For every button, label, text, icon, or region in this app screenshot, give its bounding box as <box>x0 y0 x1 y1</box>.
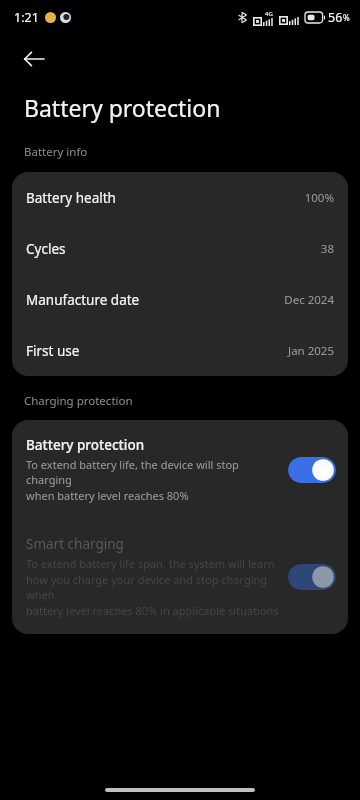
staticText: Battery health <box>26 189 116 207</box>
staticText: 56 <box>328 9 343 26</box>
staticText: Jan 2025 <box>288 343 334 359</box>
staticText: 1:21 <box>14 9 39 26</box>
staticText: Battery info <box>24 144 88 160</box>
staticText: Smart charging <box>26 535 124 553</box>
staticText: Cycles <box>26 240 66 258</box>
staticText: battery level reaches 80% in applicable … <box>26 603 279 618</box>
staticText: Dec 2024 <box>284 292 334 308</box>
staticText: 38 <box>320 241 334 257</box>
staticText: First use <box>26 342 80 360</box>
button[interactable]: Back <box>14 39 54 79</box>
staticText: Battery protection <box>24 92 221 123</box>
staticText: To extend battery life span, the system … <box>26 556 275 571</box>
button[interactable]: Battery health <box>12 172 348 223</box>
staticText: To extend battery life, the device will … <box>26 457 280 487</box>
staticText: Manufacture date <box>26 291 140 309</box>
button[interactable]: Cycles <box>12 223 348 274</box>
button[interactable]: Manufacture date <box>12 274 348 325</box>
button[interactable]: First use <box>12 325 348 376</box>
button[interactable]: Toggle <box>288 457 336 483</box>
staticText: Battery protection <box>26 436 145 454</box>
staticText: % <box>343 12 350 23</box>
staticText: how you charge your device and stop char… <box>26 572 280 602</box>
staticText: 100% <box>304 190 334 206</box>
staticText: when battery level reaches 80% <box>26 488 189 503</box>
staticText: Charging protection <box>24 393 133 409</box>
button[interactable]: Battery protection <box>12 420 348 519</box>
staticText: 4G <box>265 10 273 18</box>
button[interactable]: Toggle <box>288 564 336 590</box>
button[interactable]: Smart charging <box>12 519 348 634</box>
